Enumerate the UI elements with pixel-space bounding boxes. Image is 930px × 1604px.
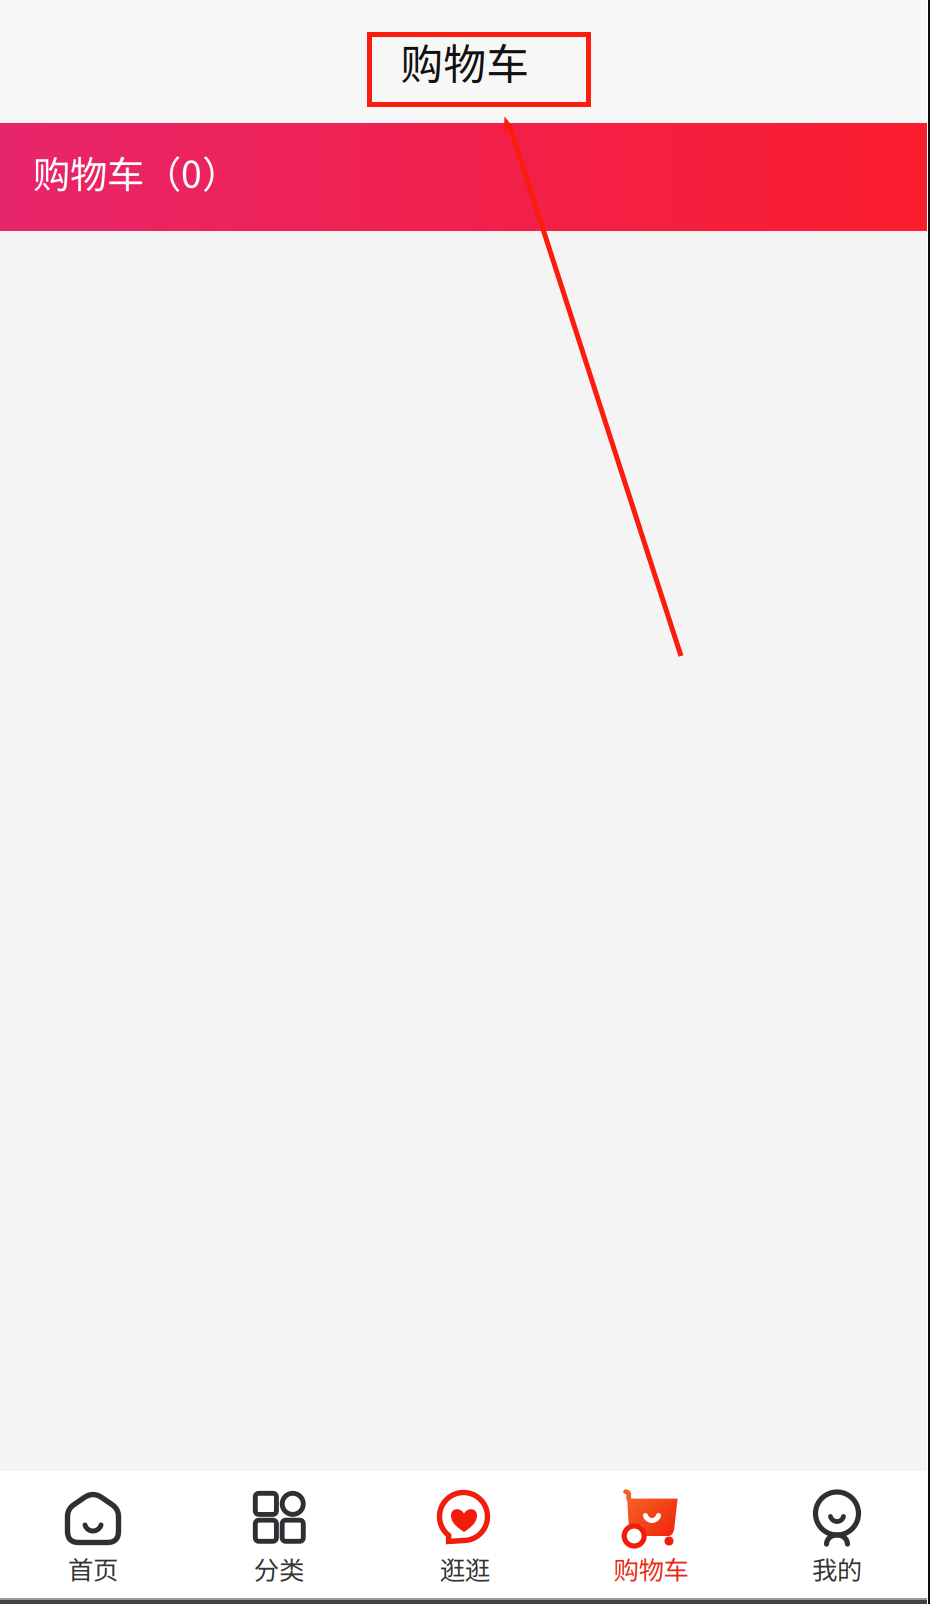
button[interactable]: 首页: [0, 1471, 186, 1598]
staticText: 分类: [254, 1550, 304, 1587]
staticText: 购物车: [400, 31, 529, 92]
staticText: 购物车: [613, 1550, 688, 1587]
staticText: 首页: [68, 1550, 118, 1587]
button[interactable]: 分类: [186, 1471, 372, 1598]
staticText: 逛逛: [440, 1550, 490, 1587]
staticText: 购物车（0）: [33, 145, 239, 199]
button[interactable]: 我的: [744, 1471, 930, 1598]
button[interactable]: 逛逛: [372, 1471, 558, 1598]
button[interactable]: 购物车: [558, 1471, 744, 1598]
staticText: 我的: [812, 1550, 862, 1587]
